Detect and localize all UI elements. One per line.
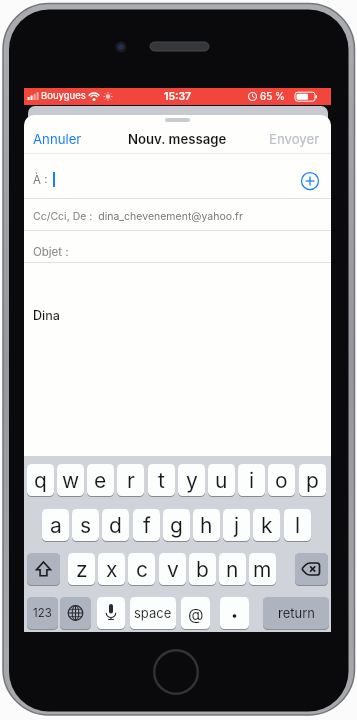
staticText: j — [234, 513, 240, 538]
staticText: Objet : — [33, 245, 69, 259]
staticText: b — [196, 557, 209, 582]
staticText: Nouv. message — [128, 131, 227, 147]
button[interactable]: c — [128, 553, 155, 585]
staticText: À : — [33, 173, 48, 187]
staticText: 15:37 — [164, 90, 192, 103]
staticText: p — [306, 468, 319, 493]
button[interactable]: l — [284, 509, 311, 541]
button[interactable]: y — [178, 464, 205, 496]
staticText: z — [76, 557, 88, 582]
staticText: l — [295, 513, 301, 538]
button[interactable]: r — [117, 464, 144, 496]
staticText: w — [62, 468, 80, 493]
button[interactable]: g — [163, 509, 190, 541]
staticText: a — [50, 513, 62, 538]
button[interactable]: k — [253, 509, 280, 541]
staticText: e — [94, 468, 107, 493]
button[interactable]: b — [189, 553, 216, 585]
button[interactable]: @ — [181, 597, 210, 629]
button[interactable] — [60, 597, 91, 629]
staticText: 123 — [33, 606, 52, 620]
button[interactable]: Envoyer — [269, 131, 320, 147]
button[interactable] — [27, 553, 60, 585]
staticText: n — [226, 557, 239, 582]
button[interactable]: Cc/Cci, De : dina_chevenement@yahoo.fr — [33, 210, 243, 223]
staticText: u — [215, 468, 228, 493]
staticText: i — [249, 468, 255, 493]
staticText: r — [127, 468, 135, 493]
button[interactable]: space — [130, 597, 176, 629]
button[interactable]: u — [208, 464, 235, 496]
staticText: f — [143, 513, 151, 538]
button[interactable]: j — [223, 509, 250, 541]
staticText: x — [106, 557, 118, 582]
staticText: k — [261, 513, 273, 538]
staticText: @ — [188, 604, 204, 623]
button[interactable]: e — [87, 464, 114, 496]
staticText: t — [158, 468, 165, 493]
button[interactable]: s — [72, 509, 99, 541]
staticText: d — [109, 513, 122, 538]
button[interactable]: d — [102, 509, 129, 541]
button[interactable]: f — [133, 509, 160, 541]
button[interactable]: n — [219, 553, 246, 585]
button[interactable]: w — [57, 464, 84, 496]
staticText: o — [275, 468, 288, 493]
staticText: Bouygues — [41, 90, 86, 101]
button[interactable]: t — [148, 464, 175, 496]
button[interactable]: Annuler — [33, 131, 82, 147]
staticText: y — [186, 468, 198, 493]
staticText: m — [253, 557, 272, 582]
button[interactable]: return — [263, 597, 329, 629]
staticText: return — [278, 605, 315, 621]
button[interactable] — [295, 553, 328, 585]
button[interactable]: p — [299, 464, 326, 496]
button[interactable]: z — [68, 553, 95, 585]
button[interactable] — [97, 597, 125, 629]
button[interactable]: i — [238, 464, 265, 496]
staticText: q — [34, 468, 47, 493]
staticText: c — [136, 557, 148, 582]
staticText: space — [134, 605, 172, 621]
button[interactable]: x — [98, 553, 125, 585]
staticText: v — [167, 557, 179, 582]
button[interactable]: v — [159, 553, 186, 585]
staticText: 65 % — [260, 90, 285, 102]
button[interactable]: o — [268, 464, 295, 496]
button[interactable]: m — [249, 553, 276, 585]
button[interactable]: h — [193, 509, 220, 541]
staticText: g — [170, 513, 183, 538]
button[interactable]: 123 — [27, 597, 58, 629]
button[interactable] — [220, 597, 249, 629]
staticText: s — [80, 513, 92, 538]
staticText: Dina — [33, 308, 60, 323]
button[interactable]: q — [27, 464, 54, 496]
button[interactable]: a — [42, 509, 69, 541]
staticText: h — [200, 513, 213, 538]
button[interactable] — [301, 172, 320, 191]
